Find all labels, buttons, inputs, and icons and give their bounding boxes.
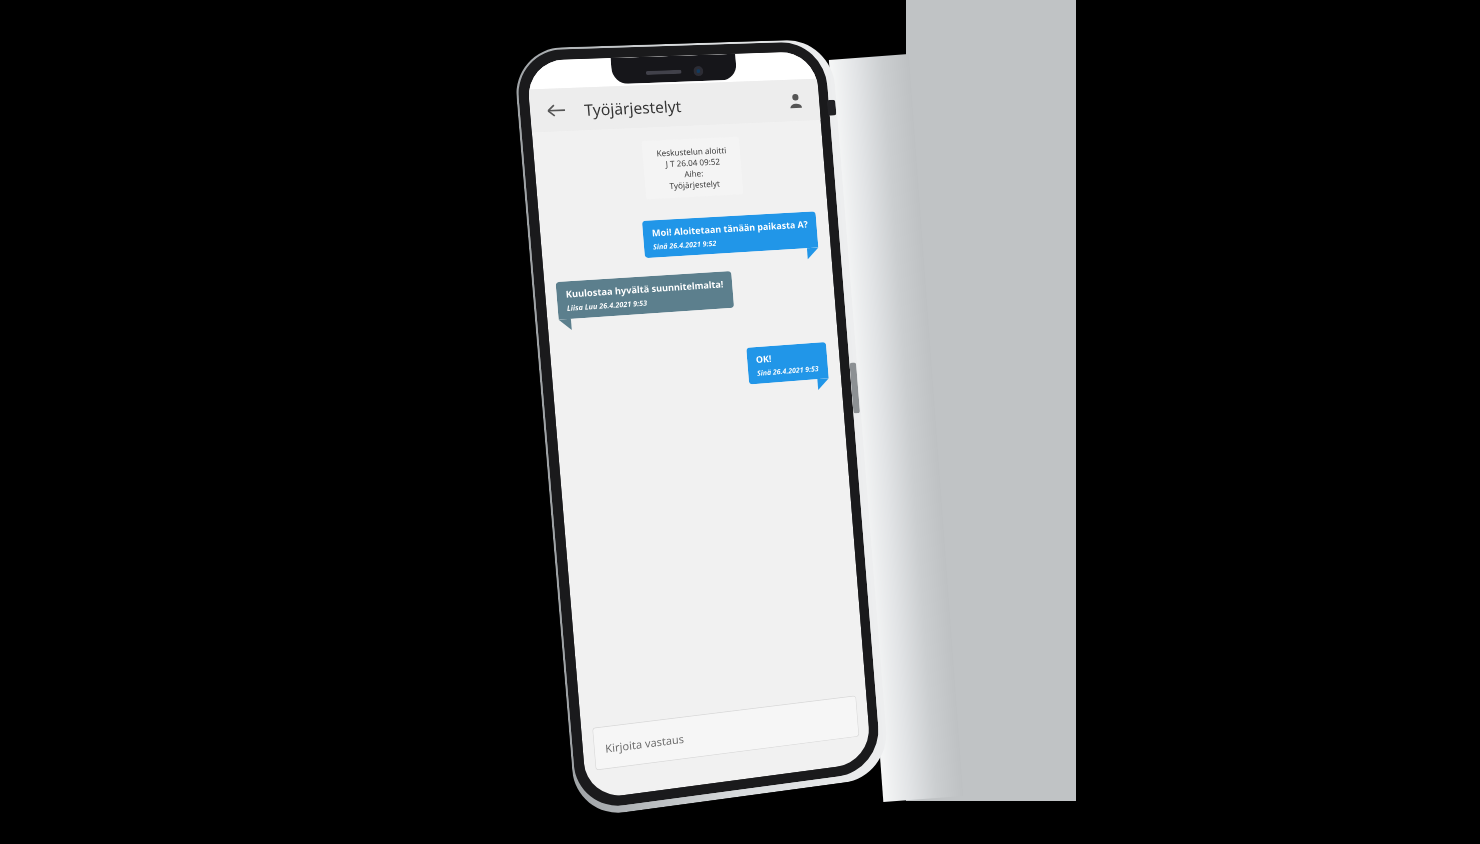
staticText: Kirjoita vastaus bbox=[605, 731, 685, 756]
button[interactable]: Kirjoita vastaus bbox=[592, 695, 859, 770]
staticText: Liisa Luu 26.4.2021 9:53 bbox=[566, 297, 648, 313]
staticText: OK! bbox=[755, 352, 772, 366]
staticText: Moi! Aloitetaan tänään paikasta A? bbox=[651, 218, 808, 239]
button[interactable]: Back bbox=[537, 92, 574, 128]
button[interactable]: OK! bbox=[746, 342, 829, 384]
staticText: Keskustelun aloitti bbox=[656, 144, 727, 158]
button[interactable]: Participants bbox=[778, 84, 812, 117]
staticText: Sinä 26.4.2021 9:53 bbox=[757, 363, 820, 378]
staticText: Kuulostaa hyvältä suunnitelmalta! bbox=[565, 277, 724, 301]
button[interactable]: Moi! Aloitetaan tänään paikasta A? bbox=[642, 211, 818, 258]
button[interactable]: Kuulostaa hyvältä suunnitelmalta! bbox=[555, 271, 734, 320]
staticText: Työjärjestelyt bbox=[668, 177, 721, 191]
staticText: Työjärjestelyt bbox=[583, 95, 682, 120]
staticText: Aihe: bbox=[683, 167, 704, 179]
staticText: J T 26.04 09:52 bbox=[665, 155, 721, 169]
staticText: Sinä 26.4.2021 9:52 bbox=[653, 238, 718, 252]
